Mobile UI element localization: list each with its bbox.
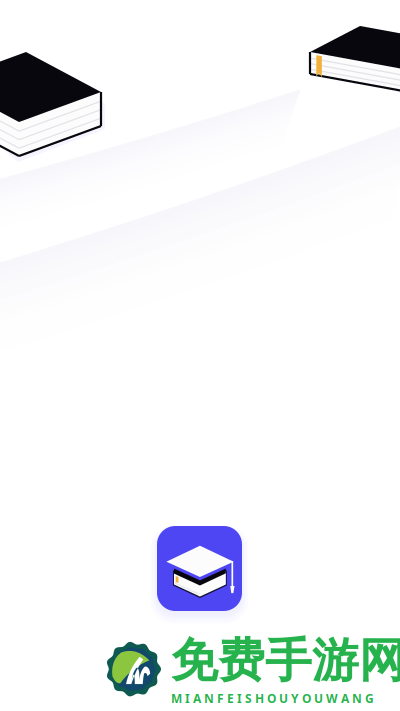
staticText: 免费手游网 <box>171 632 400 689</box>
button[interactable]: Open app <box>157 526 242 611</box>
staticText: M I A N F E I S H O U Y O U W A N G <box>171 690 374 706</box>
